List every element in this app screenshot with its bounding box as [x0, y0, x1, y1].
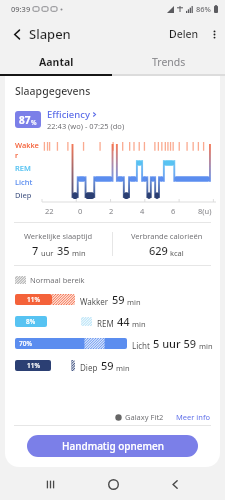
button[interactable]: Aantal	[0, 50, 112, 74]
staticText: Delen	[169, 27, 199, 41]
staticText: Aantal	[39, 55, 74, 69]
staticText: Diep	[80, 362, 98, 373]
staticText: 22:43 (wo) - 07:25 (do)	[47, 121, 125, 131]
button[interactable]: Handmatig opnemen	[27, 435, 198, 457]
button[interactable]: Meer info	[176, 412, 210, 422]
staticText: REM	[97, 318, 114, 329]
staticText: 11%	[27, 295, 40, 304]
staticText: Wakker	[15, 140, 41, 160]
staticText: 8(u)	[198, 206, 212, 216]
staticText: 2	[109, 206, 114, 216]
button[interactable]: 11%	[15, 292, 220, 307]
button[interactable]: Back	[6, 23, 28, 45]
button[interactable]: Home	[100, 471, 126, 497]
button[interactable]: 8%	[15, 314, 220, 329]
staticText: 629	[149, 243, 168, 258]
staticText: Normaal bereik	[30, 275, 85, 285]
button[interactable]: 11%	[15, 358, 220, 373]
button[interactable]: Recents	[37, 471, 63, 497]
button[interactable]: 87	[15, 108, 220, 131]
staticText: 8%	[26, 317, 36, 326]
staticText: Handmatig opnemen	[62, 439, 164, 453]
staticText: Slapen	[29, 25, 71, 43]
staticText: 59	[101, 358, 114, 373]
staticText: min	[72, 248, 86, 258]
staticText: Diep	[15, 190, 32, 200]
staticText: REM	[15, 163, 31, 173]
staticText: uur	[41, 248, 54, 258]
staticText: kcal	[170, 248, 184, 258]
staticText: Galaxy Fit2	[125, 412, 164, 422]
button[interactable]: Back	[162, 471, 188, 497]
staticText: Licht	[132, 340, 150, 351]
staticText: min	[127, 297, 141, 307]
staticText: 70%	[19, 339, 32, 348]
staticText: Trends	[152, 55, 186, 69]
staticText: Slaapgegevens	[15, 84, 91, 98]
staticText: Wakker	[80, 296, 109, 307]
staticText: 35	[57, 243, 70, 258]
staticText: %	[31, 118, 37, 127]
staticText: 59	[112, 292, 125, 307]
button[interactable]: Delen	[165, 22, 203, 46]
button[interactable]: 70%	[15, 336, 220, 351]
staticText: Werkelijke slaaptijd	[24, 231, 93, 241]
staticText: 44	[117, 314, 130, 329]
staticText: min	[116, 363, 130, 373]
button[interactable]: More options	[203, 23, 225, 45]
staticText: min	[199, 341, 213, 351]
staticText: min	[132, 319, 146, 329]
staticText: 7	[32, 243, 39, 258]
staticText: 22	[45, 206, 54, 216]
staticText: Meer info	[176, 412, 210, 422]
button[interactable]: Trends	[112, 50, 225, 74]
staticText: 87	[19, 113, 31, 127]
button[interactable]: Verbrande calorieën	[113, 231, 220, 258]
staticText: Efficiency	[47, 108, 90, 121]
staticText: Verbrande calorieën	[131, 231, 203, 241]
staticText: 6	[171, 206, 176, 216]
staticText: Licht	[15, 177, 33, 187]
staticText: 09:39	[11, 4, 31, 14]
staticText: 0	[78, 206, 83, 216]
staticText: 11%	[27, 361, 40, 370]
button[interactable]: Werkelijke slaaptijd	[5, 231, 112, 258]
staticText: 4	[140, 206, 145, 216]
staticText: 86%	[196, 4, 211, 14]
staticText: 5 uur 59	[153, 336, 197, 351]
